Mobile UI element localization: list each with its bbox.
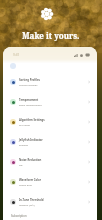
staticText: 9:41 bbox=[13, 53, 20, 57]
staticText: Temperament bbox=[19, 98, 39, 102]
button[interactable]: Noise Reduction bbox=[3, 152, 97, 172]
staticText: Jellyfish Indicator bbox=[19, 138, 43, 142]
staticText: Medium (±5¢) bbox=[19, 203, 35, 206]
staticText: Make it yours. bbox=[22, 30, 80, 41]
staticText: Algorithm Settings bbox=[19, 118, 45, 122]
button[interactable]: Jellyfish Indicator bbox=[3, 132, 97, 152]
staticText: Off bbox=[19, 163, 23, 166]
staticText: FFT Mode bbox=[19, 123, 30, 126]
staticText: Ocean Blue bbox=[19, 183, 32, 186]
staticText: Equal Temperament bbox=[19, 103, 42, 106]
button[interactable]: Waveform Color bbox=[3, 172, 97, 192]
staticText: Noise Reduction bbox=[19, 158, 42, 162]
staticText: Enabled bbox=[19, 143, 29, 146]
button[interactable]: In-Tune Threshold bbox=[3, 192, 97, 212]
button[interactable]: Algorithm Settings bbox=[3, 112, 97, 132]
staticText: In-Tune Threshold bbox=[19, 198, 44, 202]
staticText: Custom Settings bbox=[19, 83, 38, 86]
staticText: Sorting Profiles bbox=[19, 78, 40, 82]
staticText: Subscription bbox=[11, 214, 27, 218]
button[interactable]: Sorting Profiles bbox=[3, 72, 97, 92]
staticText: Waveform Color bbox=[19, 178, 42, 182]
button[interactable]: Temperament bbox=[3, 92, 97, 112]
